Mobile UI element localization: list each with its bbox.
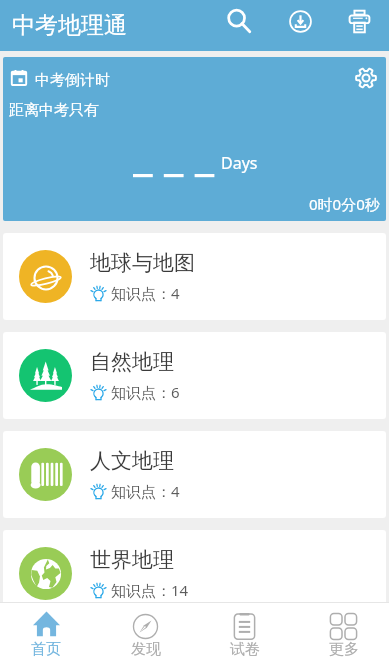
staticText: 发现 [131, 640, 161, 659]
staticText: 距离中考只有 [9, 101, 99, 120]
button[interactable]: 人文地理 [3, 431, 386, 518]
button[interactable]: 自然地理 [3, 332, 386, 419]
button[interactable]: Print [337, 0, 381, 43]
staticText: 知识点：4 [111, 481, 180, 501]
staticText: 自然地理 [90, 349, 174, 375]
staticText: 世界地理 [90, 547, 174, 573]
staticText: 中考地理通 [12, 11, 127, 40]
staticText: 知识点：4 [111, 283, 180, 303]
staticText: 0时0分0秒 [309, 194, 380, 214]
staticText: 人文地理 [90, 448, 174, 474]
button[interactable]: 世界地理 [3, 530, 386, 617]
button[interactable]: 发现 [98, 603, 195, 661]
staticText: 知识点：6 [111, 382, 180, 402]
staticText: 更多 [329, 640, 359, 659]
button[interactable]: 试卷 [195, 603, 292, 661]
button[interactable]: Search [217, 0, 261, 43]
staticText: Days [221, 152, 258, 174]
button[interactable]: 更多 [292, 603, 389, 661]
button[interactable]: 地球与地图 [3, 233, 386, 320]
staticText: 试卷 [230, 640, 260, 659]
button[interactable]: Settings [351, 63, 381, 93]
button[interactable]: Download [278, 0, 322, 43]
staticText: 首页 [31, 640, 61, 659]
staticText: 中考倒计时 [35, 71, 110, 90]
staticText: 知识点：14 [111, 580, 189, 600]
button[interactable]: 首页 [0, 603, 98, 661]
staticText: 地球与地图 [90, 250, 195, 276]
button[interactable]: 中考倒计时 [3, 57, 386, 221]
